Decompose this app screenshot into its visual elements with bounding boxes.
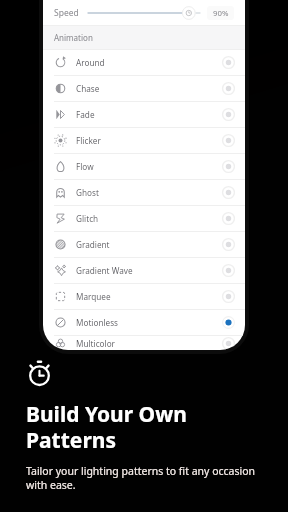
button[interactable]: Flow xyxy=(43,154,245,179)
staticText: Chase xyxy=(76,83,100,94)
button[interactable]: Ghost xyxy=(43,180,245,205)
other: Glitch xyxy=(222,212,235,225)
other: Ghost xyxy=(222,186,235,199)
staticText: Glitch xyxy=(76,213,99,224)
staticText: Multicolor xyxy=(76,338,115,349)
other: Chase xyxy=(222,82,235,95)
other: Gradient Wave xyxy=(222,264,235,277)
staticText: Flicker xyxy=(76,135,101,146)
other: Motionless xyxy=(222,316,235,329)
other: Multicolor xyxy=(222,337,235,350)
button[interactable]: Around xyxy=(43,50,245,75)
staticText: Speed xyxy=(54,7,79,19)
staticText: Flow xyxy=(76,161,94,172)
staticText: Build Your Own Patterns xyxy=(26,400,187,455)
staticText: Around xyxy=(76,57,105,68)
other: Flow xyxy=(222,160,235,173)
button[interactable]: Flicker xyxy=(43,128,245,153)
staticText: Tailor your lighting patterns to fit any… xyxy=(26,464,256,492)
other: Marquee xyxy=(222,290,235,303)
staticText: Animation xyxy=(54,32,93,43)
button[interactable]: Chase xyxy=(43,76,245,101)
other: Gradient xyxy=(222,238,235,251)
button[interactable]: 90% xyxy=(207,6,234,20)
staticText: Ghost xyxy=(76,187,99,198)
button[interactable]: Motionless xyxy=(43,310,245,335)
other: Around xyxy=(222,56,235,69)
staticText: Fade xyxy=(76,109,95,120)
button[interactable]: Marquee xyxy=(43,284,245,309)
staticText: Gradient xyxy=(76,239,110,250)
staticText: Gradient Wave xyxy=(76,265,133,276)
button[interactable]: Speed xyxy=(43,0,245,25)
other: Fade xyxy=(222,108,235,121)
button[interactable]: Gradient Wave xyxy=(43,258,245,283)
staticText: 90% xyxy=(213,8,229,19)
other: Flicker xyxy=(222,134,235,147)
button[interactable]: Multicolor xyxy=(43,336,245,350)
staticText: Marquee xyxy=(76,291,111,302)
staticText: Motionless xyxy=(76,317,119,328)
button[interactable]: Fade xyxy=(43,102,245,127)
button[interactable]: Gradient xyxy=(43,232,245,257)
button[interactable]: Glitch xyxy=(43,206,245,231)
